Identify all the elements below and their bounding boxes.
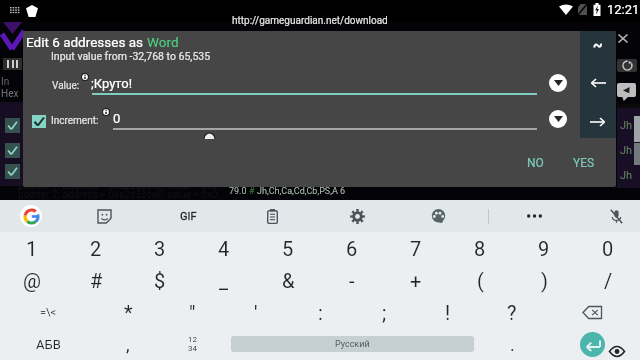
staticText: 2 — [90, 237, 102, 260]
button[interactable]: Increment checkbox — [32, 115, 46, 128]
staticText: Jh — [620, 144, 633, 157]
staticText: Jh,Ch,Ca,Cd,Cb,PS,A 6 — [257, 186, 346, 197]
button[interactable]: 7 — [384, 232, 448, 264]
button[interactable]: @ — [0, 264, 64, 296]
staticText: ; — [382, 301, 387, 324]
staticText: : — [318, 301, 323, 324]
button[interactable]: YES — [562, 153, 606, 173]
staticText: pointer 1: address = 0xa2a53cde, value =… — [18, 180, 226, 192]
staticText: Increment: — [51, 115, 99, 127]
button[interactable]: . — [480, 328, 544, 360]
button[interactable]: & — [256, 264, 320, 296]
staticText: # — [249, 186, 257, 197]
button[interactable]: Expand — [549, 110, 567, 128]
button[interactable]: " — [160, 296, 224, 328]
staticText: http://gameguardian.net/download — [232, 15, 388, 27]
button[interactable]: , — [96, 328, 160, 360]
button[interactable]: =\< — [0, 296, 96, 328]
staticText: Jh — [620, 169, 633, 182]
staticText: ! — [445, 301, 451, 324]
button[interactable]: 5 — [256, 232, 320, 264]
button[interactable]: ' — [224, 296, 288, 328]
button[interactable]: ; — [352, 296, 416, 328]
staticText: 1 — [26, 237, 38, 260]
staticText: =\< — [40, 306, 57, 319]
staticText: 8 — [474, 237, 486, 260]
button[interactable]: ! — [416, 296, 480, 328]
button[interactable]: NO — [513, 153, 557, 173]
button[interactable]: * — [96, 296, 160, 328]
button[interactable]: 4 — [192, 232, 256, 264]
button[interactable]: Enter — [544, 328, 640, 360]
button[interactable]: Close — [618, 34, 628, 43]
staticText: Value: — [52, 80, 80, 92]
staticText: NO — [527, 156, 544, 170]
button[interactable]: Expand — [549, 74, 567, 92]
staticText: Hex — [1, 88, 19, 100]
button[interactable]: 3 — [128, 232, 192, 264]
staticText: GIF — [180, 210, 197, 223]
button[interactable]: Refresh — [617, 59, 637, 72]
staticText: 9 — [538, 237, 550, 260]
button[interactable]: Settings — [349, 208, 365, 224]
button[interactable]: Message — [617, 83, 636, 97]
staticText: + — [410, 269, 422, 292]
button[interactable]: Clipboard — [264, 208, 280, 224]
button[interactable]: Theme — [430, 208, 446, 224]
staticText: " — [189, 301, 196, 324]
staticText: In — [1, 76, 10, 88]
staticText: ? — [507, 301, 517, 324]
staticText: $ — [154, 269, 166, 292]
staticText: 79.0 — [229, 186, 249, 197]
button[interactable]: 6 — [320, 232, 384, 264]
staticText: АБВ — [36, 337, 61, 352]
staticText: ~ — [593, 37, 603, 53]
button[interactable]: ) — [512, 264, 576, 296]
button[interactable]: GIF — [175, 208, 201, 224]
staticText: 3 — [154, 237, 166, 260]
button[interactable]: # — [64, 264, 128, 296]
button[interactable]: _ — [192, 264, 256, 296]
staticText: 12:21 — [607, 2, 640, 17]
button[interactable]: 8 — [448, 232, 512, 264]
staticText: YES — [573, 156, 595, 170]
button[interactable]: More options — [524, 209, 544, 223]
button[interactable]: АБВ — [0, 328, 96, 360]
button[interactable]: 2 — [64, 232, 128, 264]
button[interactable]: 1 — [0, 232, 64, 264]
button[interactable]: / — [576, 264, 640, 296]
staticText: , — [126, 334, 130, 355]
button[interactable]: Русский — [224, 328, 480, 360]
staticText: @ — [23, 269, 41, 292]
staticText: 12 34 — [188, 335, 197, 353]
staticText: 4 — [218, 237, 230, 260]
button[interactable]: : — [288, 296, 352, 328]
button[interactable]: 12 34 — [160, 328, 224, 360]
staticText: Word — [147, 34, 179, 50]
staticText: 6 — [346, 237, 358, 260]
staticText: 7 — [410, 237, 422, 260]
button[interactable]: + — [384, 264, 448, 296]
button[interactable]: Backspace — [544, 296, 640, 328]
staticText: Input value from -32,768 to 65,535 — [51, 50, 211, 62]
button[interactable]: ( — [448, 264, 512, 296]
button[interactable]: Voice input — [608, 208, 624, 224]
button[interactable]: - — [320, 264, 384, 296]
staticText: - — [349, 269, 355, 292]
staticText: pointer 2: address = 0xa2a53ce0, value =… — [18, 189, 226, 201]
button[interactable]: ? — [480, 296, 544, 328]
staticText: 5 — [282, 237, 294, 260]
staticText: . — [510, 334, 515, 355]
button[interactable]: 9 — [512, 232, 576, 264]
button[interactable]: Hide keyboard — [609, 346, 625, 357]
staticText: Jh — [620, 119, 633, 132]
button[interactable]: Stickers — [96, 208, 112, 224]
staticText: * — [124, 301, 133, 324]
staticText: # — [90, 269, 103, 292]
button[interactable]: $ — [128, 264, 192, 296]
staticText: Edit 6 addresses as — [26, 34, 147, 50]
button[interactable]: 0 — [576, 232, 640, 264]
staticText: ;Круто! — [91, 76, 133, 91]
staticText: / — [604, 269, 613, 292]
button[interactable]: Google — [20, 205, 42, 227]
